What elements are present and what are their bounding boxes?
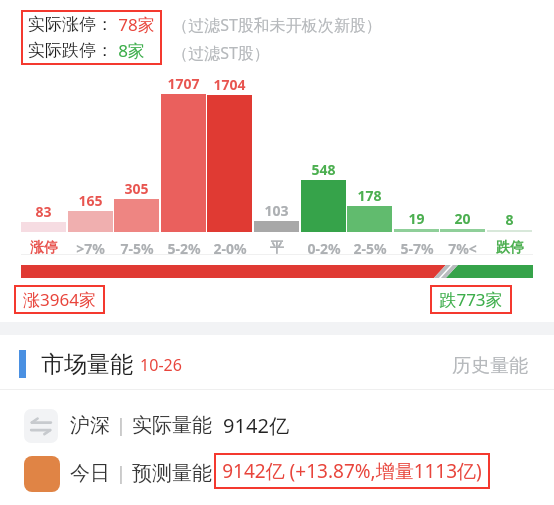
staticText: 7%< [448,239,477,258]
staticText: 7-5% [120,239,154,258]
staticText: 178 [357,186,382,205]
staticText: 今日 [70,461,110,486]
button[interactable]: Exchange [24,409,58,443]
staticText: 跌773家 [439,288,503,311]
staticText: 78家 [118,13,155,36]
staticText: 19 [408,209,425,228]
staticText: 2-0% [213,239,247,258]
staticText: >7% [76,239,105,258]
staticText: 2-5% [353,239,387,258]
staticText: 实际跌停： [28,40,113,61]
staticText: 8 [505,210,514,229]
staticText: 预测量能 [132,461,212,486]
staticText: （过滤ST股） [172,42,270,64]
button[interactable]: 涨3964家 [23,288,96,311]
staticText: 305 [124,179,149,198]
staticText: 1707 [167,74,200,93]
staticText: 0-2% [307,239,341,258]
staticText: 跌停 [496,239,524,257]
staticText: 10-26 [140,354,182,376]
staticText: 5-2% [167,239,201,258]
staticText: 20 [454,209,471,228]
staticText: 8家 [118,39,145,62]
staticText: 83 [35,202,52,221]
staticText: 平 [270,239,284,257]
button[interactable] [21,265,533,278]
staticText: 实际涨停： [28,14,113,35]
staticText: 1704 [213,75,246,94]
staticText: 涨停 [30,239,58,257]
button[interactable]: 实际涨停： [28,13,155,62]
staticText: 9142亿 (+13.87%,增量1113亿) [222,458,482,484]
staticText: 165 [78,191,103,210]
button[interactable]: Forecast volume [24,456,60,492]
staticText: 103 [264,201,289,220]
staticText: 涨3964家 [23,288,96,311]
staticText: 历史量能 [452,354,528,378]
staticText: 实际量能 [132,413,212,438]
button[interactable]: 沪深 [70,412,289,439]
button[interactable]: 9142亿 (+13.87%,增量1113亿) [222,458,482,484]
staticText: | [116,413,126,438]
staticText: 9142亿 [223,412,289,439]
staticText: | [116,461,126,486]
staticText: 548 [311,160,336,179]
staticText: （过滤ST股和未开板次新股） [172,14,382,36]
staticText: 市场量能 [41,350,133,379]
button[interactable]: 跌773家 [439,288,503,311]
staticText: 5-7% [400,239,434,258]
button[interactable]: 历史量能 [452,354,528,378]
staticText: 沪深 [70,413,110,438]
